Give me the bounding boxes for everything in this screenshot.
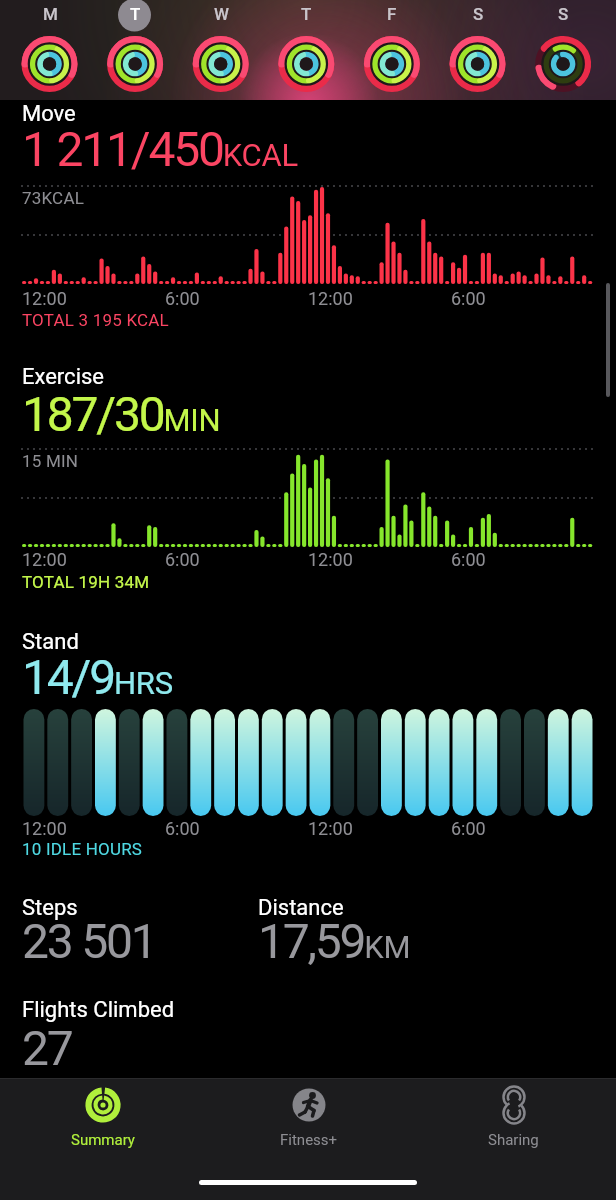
staticText: 73KCAL	[22, 188, 85, 208]
staticText: 6:00	[451, 818, 486, 839]
staticText: Distance	[258, 895, 344, 921]
button[interactable]: Fitness+	[206, 1085, 411, 1149]
staticText: TOTAL 19H 34M	[22, 572, 150, 592]
staticText: 12:00	[308, 549, 353, 570]
staticText: 10 IDLE HOURS	[22, 839, 143, 859]
staticText: 12:00	[22, 549, 67, 570]
button[interactable]: Sharing	[411, 1085, 616, 1149]
staticText: 1 211/450KCAL	[22, 121, 299, 177]
staticText: 27	[22, 1020, 72, 1076]
staticText: 12:00	[22, 818, 67, 839]
staticText: Sharing	[488, 1131, 539, 1149]
staticText: Stand	[22, 629, 79, 655]
staticText: T	[301, 4, 312, 24]
staticText: Fitness+	[280, 1131, 338, 1149]
staticText: Move	[22, 101, 76, 127]
staticText: M	[43, 4, 58, 24]
staticText: Summary	[71, 1131, 135, 1149]
staticText: F	[387, 4, 397, 24]
staticText: S	[558, 4, 569, 24]
staticText: 23 501	[22, 913, 156, 969]
staticText: Steps	[22, 895, 78, 921]
staticText: T	[130, 4, 141, 24]
staticText: 6:00	[165, 818, 200, 839]
button[interactable]: Summary	[0, 1085, 206, 1149]
staticText: 17,59KM	[258, 913, 411, 969]
staticText: 187/30MIN	[22, 386, 221, 442]
staticText: Exercise	[22, 364, 105, 390]
staticText: Flights Climbed	[22, 997, 175, 1023]
staticText: 12:00	[22, 288, 67, 309]
staticText: 6:00	[165, 288, 200, 309]
staticText: 6:00	[451, 288, 486, 309]
staticText: 12:00	[308, 288, 353, 309]
staticText: S	[473, 4, 484, 24]
staticText: 6:00	[165, 549, 200, 570]
staticText: 15 MIN	[22, 451, 79, 471]
staticText: 6:00	[451, 549, 486, 570]
staticText: 14/9HRS	[22, 649, 173, 705]
staticText: W	[214, 4, 229, 24]
staticText: TOTAL 3 195 KCAL	[22, 310, 169, 330]
staticText: 12:00	[308, 818, 353, 839]
